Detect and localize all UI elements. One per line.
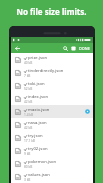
staticText: toki.json xyxy=(28,81,45,87)
staticText: values.json xyxy=(28,172,50,178)
button[interactable]: toki.json xyxy=(11,79,93,92)
button[interactable]: nasa.json xyxy=(11,118,93,131)
button[interactable]: values.json xyxy=(11,170,93,183)
button[interactable]: Back xyxy=(13,44,21,52)
staticText: 9 kB xyxy=(24,152,31,156)
button[interactable]: prize.json xyxy=(11,53,93,66)
staticText: 17.1 kB xyxy=(24,139,35,143)
button[interactable]: DONE xyxy=(78,46,91,51)
staticText: 52 kB xyxy=(24,87,33,91)
button[interactable]: index.json xyxy=(11,92,93,105)
staticText: 40 kB xyxy=(24,61,33,65)
staticText: maxio.json xyxy=(28,107,50,113)
button[interactable]: Select all xyxy=(70,45,77,52)
staticText: 42 kB xyxy=(24,100,33,104)
button[interactable]: tinderdirectly.json xyxy=(11,66,93,79)
staticText: 80 kB xyxy=(24,165,33,169)
button[interactable]: Search xyxy=(62,45,69,52)
staticText: pokemon.json xyxy=(28,159,57,165)
staticText: index.json xyxy=(28,94,49,100)
staticText: tinderdirectly.json xyxy=(28,68,64,74)
staticText: No file size limits. xyxy=(16,6,87,17)
staticText: prize.json xyxy=(28,55,48,61)
staticText: 1.4 kB xyxy=(24,113,34,117)
staticText: nasa.json xyxy=(28,120,47,126)
staticText: 42 kB xyxy=(24,126,33,130)
button[interactable]: try02.json xyxy=(11,144,93,157)
button[interactable]: maxio.json xyxy=(11,105,93,118)
staticText: 3 kB xyxy=(24,178,31,182)
button[interactable]: pokemon.json xyxy=(11,157,93,170)
button[interactable]: try.json xyxy=(11,131,93,144)
staticText: DONE xyxy=(79,46,90,51)
staticText: 7 kB xyxy=(24,74,31,78)
staticText: try02.json xyxy=(28,146,48,152)
staticText: try.json xyxy=(28,133,43,139)
